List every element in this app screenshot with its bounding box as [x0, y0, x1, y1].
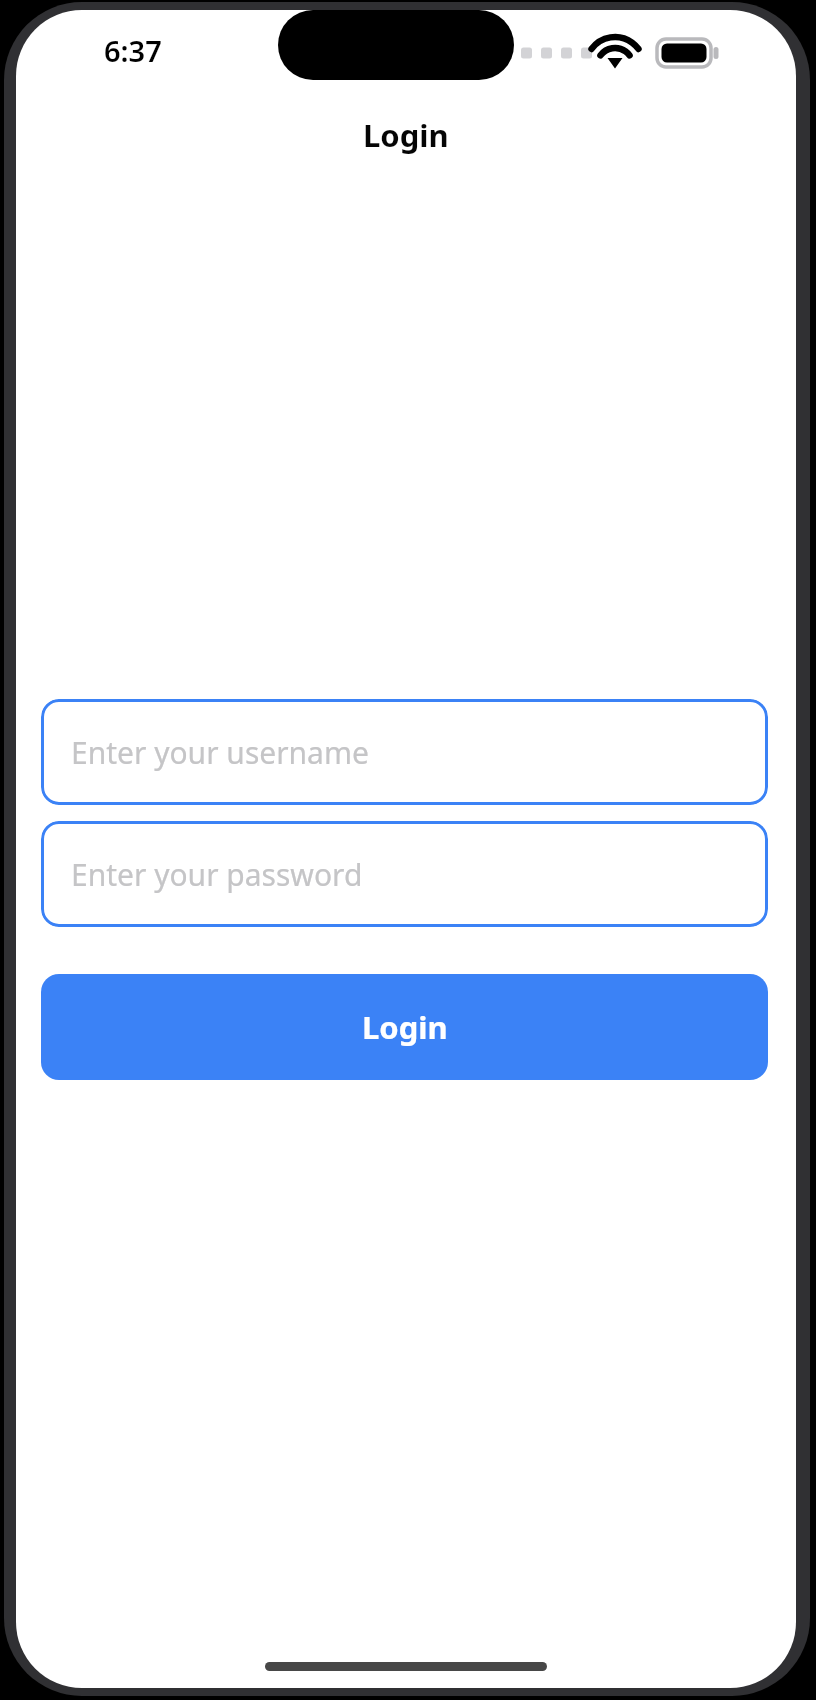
staticText: Login	[362, 1006, 448, 1048]
button[interactable]: Password input	[41, 821, 768, 927]
staticText: Enter your password	[71, 854, 363, 895]
button[interactable]: Username input	[41, 699, 768, 805]
staticText: Login	[363, 114, 449, 156]
button[interactable]: Login	[41, 974, 768, 1080]
other: Cellular, Wi-Fi and battery status	[465, 30, 695, 76]
staticText: Enter your username	[71, 732, 369, 773]
staticText: 6:37	[104, 31, 162, 70]
